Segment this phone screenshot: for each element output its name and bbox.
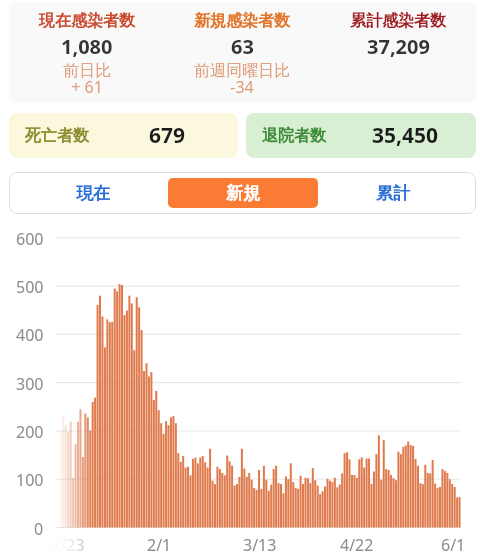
staticText: 現在 (76, 183, 110, 204)
staticText: 500 (16, 276, 44, 296)
staticText: 2/1 (147, 534, 172, 556)
staticText: 前日比 + 61 (63, 61, 111, 97)
button[interactable]: 累計 (318, 178, 468, 208)
staticText: 4/22 (340, 534, 374, 556)
staticText: 35,450 (372, 121, 439, 150)
staticText: 累計 (376, 183, 410, 204)
button[interactable]: 退院者数 (246, 113, 476, 158)
staticText: 37,209 (367, 33, 430, 60)
button[interactable]: 新規 (168, 178, 318, 208)
button[interactable]: 累計感染者数 (320, 2, 476, 103)
staticText: 300 (16, 373, 44, 393)
staticText: 1,080 (61, 33, 113, 60)
staticText: 6/1 (441, 534, 466, 556)
staticText: 400 (16, 324, 44, 344)
staticText: 新規 (226, 183, 260, 204)
staticText: 現在感染者数 (39, 11, 135, 31)
staticText: 12/23 (42, 534, 85, 556)
button[interactable]: 現在感染者数 (9, 2, 164, 103)
staticText: 63 (231, 33, 254, 60)
staticText: 100 (16, 469, 44, 489)
staticText: 累計感染者数 (350, 11, 446, 31)
staticText: 679 (149, 121, 186, 150)
button[interactable]: 新規感染者数 (164, 2, 320, 103)
staticText: 600 (16, 228, 44, 248)
button[interactable]: 死亡者数 (9, 113, 238, 158)
staticText: 新規感染者数 (194, 11, 290, 31)
staticText: 前週同曜日比 -34 (194, 61, 290, 97)
staticText: 0 (34, 518, 44, 538)
staticText: 退院者数 (262, 126, 326, 146)
staticText: 3/13 (243, 534, 277, 556)
staticText: 200 (16, 421, 44, 441)
button[interactable]: 現在 (17, 178, 168, 208)
staticText: 死亡者数 (25, 126, 89, 146)
